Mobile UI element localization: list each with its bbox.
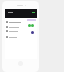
button[interactable]: Status one — [28, 24, 31, 27]
button[interactable] — [5, 29, 37, 34]
button[interactable]: Status two — [31, 24, 34, 27]
button[interactable]: Status three — [31, 31, 34, 34]
button[interactable]: Menu — [5, 9, 37, 18]
button[interactable] — [5, 20, 37, 25]
button[interactable] — [5, 25, 37, 30]
button[interactable] — [5, 35, 37, 40]
